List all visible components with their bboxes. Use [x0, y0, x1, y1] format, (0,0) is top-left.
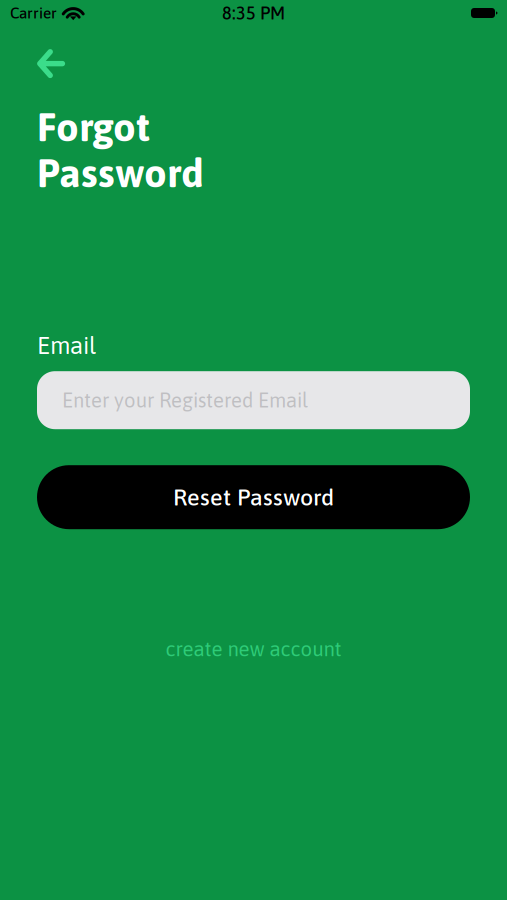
- staticText: Enter your Registered Email: [62, 389, 308, 412]
- staticText: Password: [37, 150, 204, 196]
- button[interactable]: Back: [0, 43, 83, 84]
- staticText: Carrier: [10, 4, 57, 22]
- button[interactable]: create new account: [0, 631, 507, 667]
- staticText: Email: [37, 332, 96, 359]
- staticText: Reset Password: [173, 484, 334, 510]
- staticText: create new account: [165, 637, 341, 661]
- staticText: 8:35 PM: [222, 3, 285, 23]
- button[interactable]: Reset Password: [0, 465, 507, 529]
- staticText: Forgot: [37, 104, 150, 150]
